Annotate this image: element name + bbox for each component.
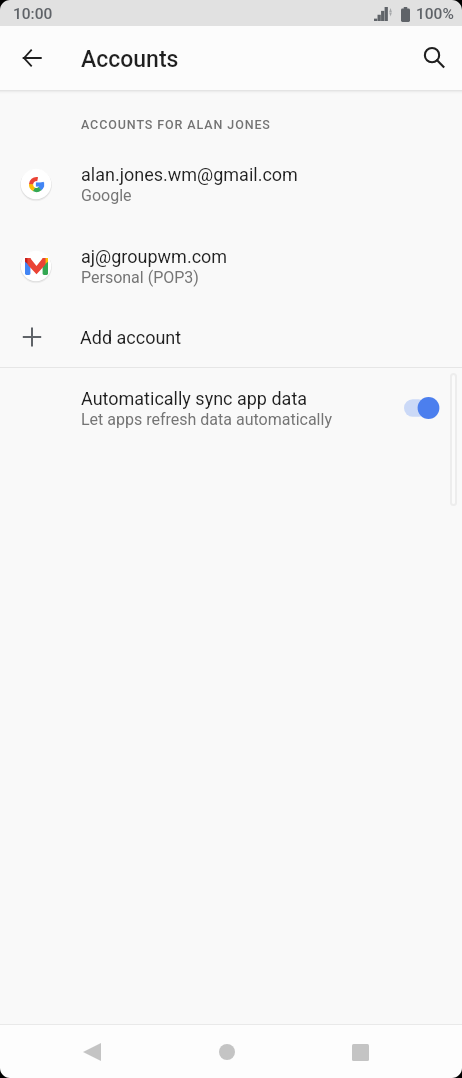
button[interactable]: Back [68,1028,116,1076]
staticText: 10:00 [13,5,53,23]
staticText: Automatically sync app data [81,388,308,409]
staticText: 100% [416,5,454,23]
button[interactable]: alan.jones.wm@gmail.com [0,143,462,225]
staticText: Personal (POP3) [81,268,199,287]
button[interactable]: aj@groupwm.com [0,225,462,307]
staticText: Let apps refresh data automatically [81,410,332,429]
staticText: alan.jones.wm@gmail.com [81,164,298,185]
button[interactable]: Add account [0,311,462,363]
button[interactable]: Recent apps [336,1028,384,1076]
staticText: Google [81,186,132,205]
staticText: aj@groupwm.com [81,246,228,267]
staticText: Add account [80,327,182,348]
button[interactable]: Navigate up [8,34,56,82]
button[interactable]: Home [203,1028,251,1076]
staticText: Accounts [81,46,179,73]
button[interactable]: Search [410,34,458,82]
button[interactable]: Automatically sync app data toggle [404,396,440,420]
button[interactable]: Automatically sync app data [0,372,462,444]
staticText: ACCOUNTS FOR ALAN JONES [81,117,271,132]
